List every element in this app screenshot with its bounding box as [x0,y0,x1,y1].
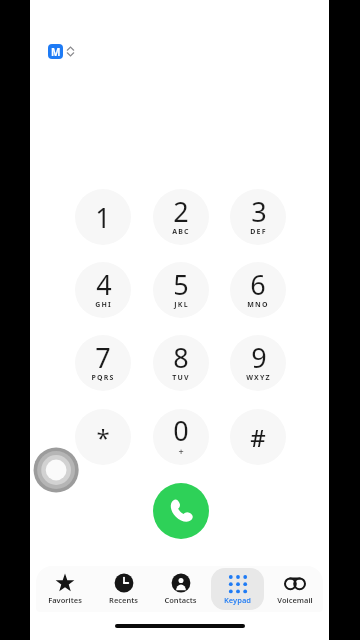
staticText: # [250,421,266,454]
button[interactable]: Recents [96,568,150,610]
button[interactable]: 1 [75,189,131,245]
button[interactable]: 2 [153,189,209,245]
staticText: * [96,421,110,454]
staticText: DEF [250,227,267,237]
button[interactable]: 8 [153,335,209,391]
button[interactable]: 3 [230,189,286,245]
staticText: 1 [95,199,111,236]
button[interactable]: 4 [75,262,131,318]
button[interactable]: 5 [153,262,209,318]
staticText: GHI [95,300,112,310]
button[interactable]: Favorites [38,568,92,610]
button[interactable]: Keypad [211,568,264,610]
staticText: 5 [173,266,189,303]
button[interactable]: 6 [230,262,286,318]
button[interactable]: 7 [75,335,131,391]
staticText: 8 [173,339,189,376]
staticText: JKL [174,300,189,310]
staticText: ABC [172,227,190,237]
staticText: PQRS [91,373,115,383]
staticText: 6 [250,266,266,303]
staticText: + [178,445,184,457]
staticText: 4 [96,266,112,303]
staticText: M [51,45,61,59]
button[interactable]: 9 [230,335,286,391]
button[interactable]: Account switcher [46,42,77,61]
staticText: 7 [95,339,111,376]
staticText: Recents [109,595,138,605]
button[interactable]: Assistive touch [35,446,83,494]
staticText: Contacts [164,595,197,605]
button[interactable]: 0 [153,409,209,465]
staticText: WXYZ [246,373,271,383]
button[interactable]: Call [153,483,209,539]
button[interactable]: # [230,409,286,465]
staticText: 3 [251,193,267,230]
staticText: 0 [173,412,189,449]
staticText: 9 [251,339,267,376]
button[interactable]: * [75,409,131,465]
staticText: Favorites [48,595,82,605]
staticText: TUV [172,373,190,383]
staticText: Voicemail [277,595,313,605]
button[interactable]: Voicemail [268,568,321,610]
staticText: Keypad [224,595,251,605]
button[interactable]: Contacts [154,568,207,610]
staticText: 2 [173,193,189,230]
staticText: MNO [247,300,269,310]
